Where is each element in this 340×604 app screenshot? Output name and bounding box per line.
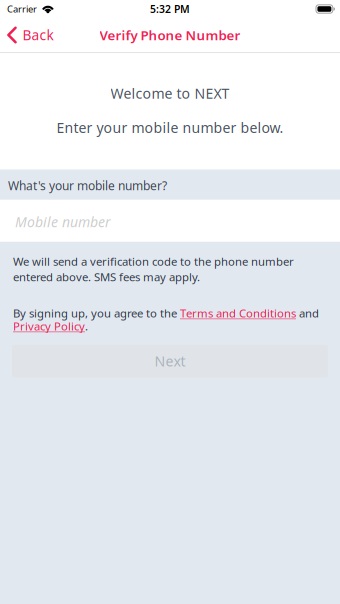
button[interactable]: Privacy Policy [13,318,85,334]
staticText: Back [22,26,53,44]
staticText: Verify Phone Number [99,26,240,44]
staticText: Mobile number [15,212,111,231]
staticText: Carrier [7,3,37,15]
staticText: By signing up, you agree to the [13,305,180,321]
staticText: Privacy Policy [13,318,85,334]
button[interactable]: Back [0,18,61,52]
staticText: What's your mobile number? [8,177,167,194]
staticText: Welcome to NEXT [110,84,229,103]
staticText: 5:32 PM [150,2,190,16]
staticText: Terms and Conditions [180,305,296,321]
staticText: . [85,318,88,334]
staticText: Enter your mobile number below. [56,118,283,137]
staticText: and [296,305,319,321]
staticText: We will send a verification code to the … [13,254,294,285]
button[interactable]: Next [12,345,328,378]
button[interactable]: Terms and Conditions [180,305,296,321]
staticText: Next [154,351,185,371]
